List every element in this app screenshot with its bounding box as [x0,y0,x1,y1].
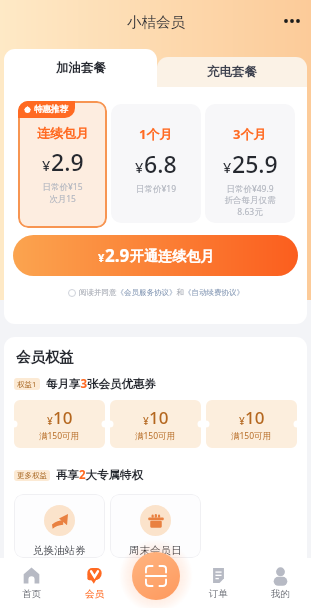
button[interactable]: 兑换油站券 [14,494,105,558]
staticText: ¥ [42,155,51,175]
staticText: 满150可用 [135,430,176,442]
staticText: 25.9 [232,148,278,179]
button[interactable]: 1个月 [111,104,201,223]
button[interactable]: ¥ [13,235,298,276]
button[interactable]: 3个月 [205,104,295,223]
staticText: ¥ [47,414,53,428]
staticText: 首页 [22,588,41,600]
staticText: 充电套餐 [207,64,257,80]
staticText: 每月享3张会员优惠券 [46,376,157,392]
button[interactable]: 阅读并同意《会员服务协议》和《自动续费协议》 [4,288,307,297]
staticText: 1个月 [139,125,173,143]
button[interactable]: 订单 [187,558,249,608]
staticText: 日常价¥49.9 折合每月仅需 8.63元 [205,183,295,217]
button[interactable]: ¥ [206,400,297,448]
staticText: 特惠推荐 [34,104,68,115]
staticText: 阅读并同意《会员服务协议》和《自动续费协议》 [79,288,244,297]
staticText: 周末会员日 [129,544,182,557]
staticText: 再享2大专属特权 [56,467,144,483]
staticText: 满150可用 [39,430,80,442]
staticText: 我的 [271,588,290,600]
staticText: ¥ [223,157,232,177]
staticText: 兑换油站券 [33,544,86,557]
staticText: 日常价¥19 [111,183,201,195]
button[interactable]: 周末会员日 [110,494,201,558]
staticText: 加油套餐 [56,60,106,76]
button[interactable]: 首页 [0,558,63,608]
button[interactable]: ¥ [14,400,105,448]
button[interactable]: 加油套餐 [4,49,157,87]
button[interactable]: 会员 [63,558,125,608]
staticText: 6.8 [144,148,177,179]
staticText: 10 [53,406,73,429]
staticText: 订单 [209,588,228,600]
staticText: 满150可用 [231,430,272,442]
button[interactable]: Scan QR code [132,552,180,600]
staticText: 会员权益 [16,348,74,366]
staticText: 日常价¥15 次月15 [18,181,107,204]
staticText: 权益1 [17,379,37,389]
button[interactable]: ¥ [110,400,201,448]
button[interactable]: 我的 [249,558,311,608]
staticText: ¥ [98,250,105,265]
staticText: 2.9 [105,244,130,267]
staticText: 会员 [85,588,104,600]
staticText: 更多权益 [17,471,47,480]
staticText: ¥ [143,414,149,428]
staticText: ¥ [239,414,245,428]
staticText: 3个月 [233,125,267,143]
button[interactable]: 充电套餐 [157,57,307,87]
staticText: 连续包月 [37,125,89,141]
staticText: 10 [245,406,265,429]
staticText: 小桔会员 [127,13,185,31]
staticText: 开通连续包月 [130,248,214,266]
button[interactable]: More options [278,7,306,35]
staticText: 10 [149,406,169,429]
staticText: 2.9 [51,146,84,177]
staticText: ¥ [135,157,144,177]
button[interactable]: 连续包月 [18,101,107,228]
